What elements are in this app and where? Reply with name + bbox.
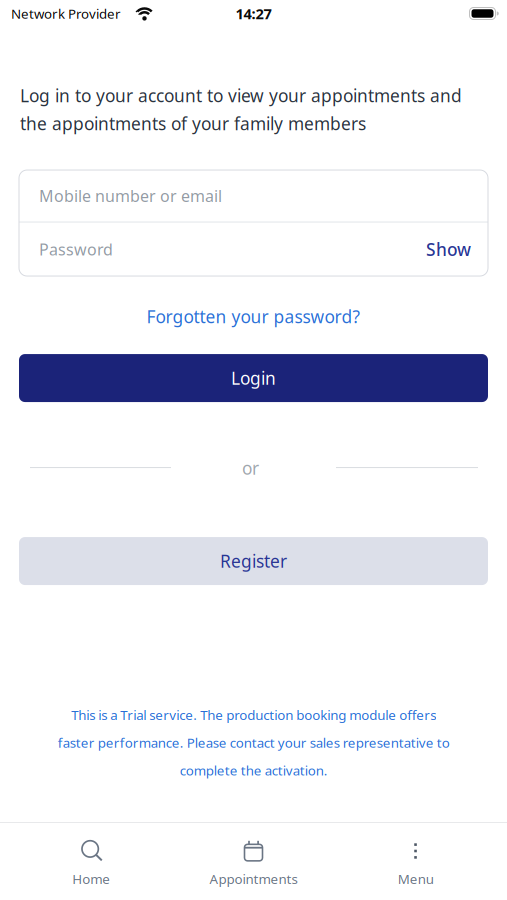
staticText: or bbox=[242, 456, 259, 479]
button[interactable]: Login bbox=[19, 354, 488, 402]
button[interactable]: Password bbox=[19, 222, 488, 276]
staticText: Log in to your account to view your appo… bbox=[20, 84, 462, 135]
button[interactable]: Menu bbox=[335, 839, 497, 888]
staticText: Password bbox=[39, 239, 113, 260]
button[interactable]: Forgotten your password? bbox=[146, 305, 360, 328]
staticText: This is a Trial service. The production … bbox=[57, 706, 449, 779]
staticText: Appointments bbox=[209, 870, 297, 888]
staticText: Login bbox=[231, 366, 276, 389]
staticText: Home bbox=[72, 870, 110, 888]
staticText: Menu bbox=[398, 870, 434, 888]
staticText: Network Provider bbox=[11, 5, 121, 22]
staticText: Register bbox=[220, 549, 287, 572]
staticText: Forgotten your password? bbox=[146, 305, 360, 328]
staticText: 14:27 bbox=[235, 4, 271, 23]
button[interactable]: Register bbox=[19, 537, 488, 585]
staticText: Show bbox=[426, 238, 471, 261]
button[interactable]: Appointments bbox=[172, 839, 335, 888]
button[interactable]: Mobile number or email bbox=[19, 170, 488, 221]
button[interactable]: Home bbox=[10, 839, 172, 888]
staticText: Mobile number or email bbox=[39, 185, 222, 206]
